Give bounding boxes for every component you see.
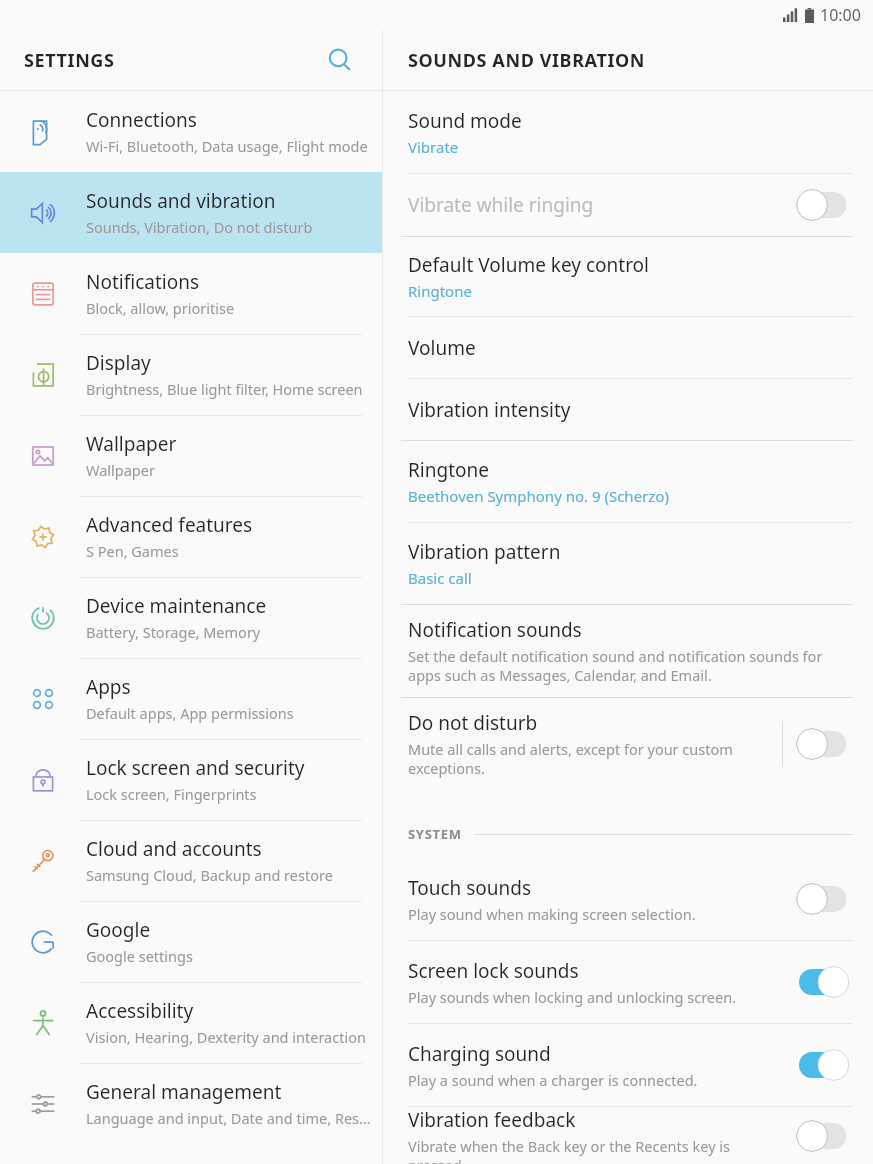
staticText: Notification sounds (408, 617, 582, 643)
button[interactable]: Google (0, 901, 382, 982)
staticText: Sound mode (408, 108, 522, 134)
staticText: Vibrate when the Back key or the Recents… (408, 1136, 782, 1164)
staticText: Ringtone (408, 457, 489, 483)
staticText: Device maintenance (86, 593, 267, 619)
staticText: Google settings (86, 946, 193, 966)
button[interactable]: Vibration intensity (383, 379, 873, 440)
staticText: Mute all calls and alerts, except for yo… (408, 739, 733, 778)
button[interactable]: Device maintenance (0, 577, 382, 658)
button[interactable]: Lock screen and security (0, 739, 382, 820)
staticText: Play a sound when a charger is connected… (408, 1070, 698, 1090)
staticText: Play sounds when locking and unlocking s… (408, 987, 737, 1007)
button[interactable]: Accessibility (0, 982, 382, 1063)
button[interactable]: Apps (0, 658, 382, 739)
button[interactable]: Sounds and vibration (0, 172, 382, 253)
button[interactable]: Display (0, 334, 382, 415)
staticText: Do not disturb (408, 710, 538, 736)
staticText: Notifications (86, 269, 200, 295)
staticText: Apps (86, 674, 131, 700)
staticText: Wallpaper (86, 431, 177, 457)
button[interactable]: Vibration pattern (383, 523, 873, 604)
button[interactable]: Connections (0, 91, 382, 172)
staticText: Battery, Storage, Memory (86, 622, 261, 642)
button[interactable]: Vibration feedback (383, 1107, 873, 1164)
staticText: Screen lock sounds (408, 958, 579, 984)
staticText: Vibration feedback (408, 1107, 576, 1133)
button[interactable]: Do not disturb (799, 728, 853, 760)
button[interactable]: Vibrate while ringing (799, 189, 853, 221)
staticText: Set the default notification sound and n… (408, 646, 823, 685)
staticText: Volume (408, 335, 476, 361)
staticText: SETTINGS (24, 48, 115, 73)
staticText: SYSTEM (408, 825, 462, 843)
staticText: Charging sound (408, 1041, 551, 1067)
staticText: Basic call (408, 568, 472, 588)
button[interactable]: Screen lock sounds (383, 941, 873, 1023)
staticText: Google (86, 917, 151, 943)
button[interactable]: Notifications (0, 253, 382, 334)
staticText: Vibration pattern (408, 539, 561, 565)
button[interactable]: Touch sounds (383, 858, 873, 940)
staticText: Brightness, Blue light filter, Home scre… (86, 379, 363, 399)
staticText: Display (86, 350, 151, 376)
staticText: 10:00 (820, 4, 861, 26)
staticText: Advanced features (86, 512, 253, 538)
staticText: General management (86, 1079, 282, 1105)
staticText: Cloud and accounts (86, 836, 262, 862)
staticText: Play sound when making screen selection. (408, 904, 696, 924)
button[interactable]: Search (320, 40, 360, 80)
staticText: Vibrate (408, 137, 459, 157)
button[interactable]: Vibration feedback (799, 1120, 853, 1152)
button[interactable]: Volume (383, 317, 873, 378)
staticText: Vibrate while ringing (408, 192, 594, 218)
button[interactable]: Ringtone (383, 441, 873, 522)
staticText: SOUNDS AND VIBRATION (408, 48, 646, 73)
staticText: Wallpaper (86, 460, 155, 480)
staticText: Lock screen, Fingerprints (86, 784, 257, 804)
staticText: Samsung Cloud, Backup and restore (86, 865, 333, 885)
button[interactable]: Sound mode (383, 91, 873, 173)
staticText: Block, allow, prioritise (86, 298, 235, 318)
staticText: Ringtone (408, 281, 472, 301)
button[interactable]: Charging sound (799, 1049, 853, 1081)
button[interactable]: Default Volume key control (383, 237, 873, 316)
staticText: Vibration intensity (408, 397, 571, 423)
button[interactable]: Advanced features (0, 496, 382, 577)
staticText: Connections (86, 107, 197, 133)
button[interactable]: Vibrate while ringing (383, 174, 873, 236)
staticText: Accessibility (86, 998, 194, 1024)
staticText: Beethoven Symphony no. 9 (Scherzo) (408, 486, 669, 506)
staticText: Lock screen and security (86, 755, 305, 781)
button[interactable]: Wallpaper (0, 415, 382, 496)
staticText: Wi-Fi, Bluetooth, Data usage, Flight mod… (86, 136, 368, 156)
button[interactable]: Do not disturb (383, 698, 873, 790)
button[interactable]: Cloud and accounts (0, 820, 382, 901)
staticText: Sounds, Vibration, Do not disturb (86, 217, 313, 237)
button[interactable]: Charging sound (383, 1024, 873, 1106)
staticText: S Pen, Games (86, 541, 179, 561)
staticText: Language and input, Date and time, Res… (86, 1108, 371, 1128)
staticText: Default apps, App permissions (86, 703, 294, 723)
staticText: Vision, Hearing, Dexterity and interacti… (86, 1027, 366, 1047)
button[interactable]: Screen lock sounds (799, 966, 853, 998)
staticText: Sounds and vibration (86, 188, 276, 214)
button[interactable]: Touch sounds (799, 883, 853, 915)
button[interactable]: General management (0, 1063, 382, 1144)
button[interactable]: Notification sounds (383, 605, 873, 697)
staticText: Default Volume key control (408, 252, 649, 278)
staticText: Touch sounds (408, 875, 532, 901)
